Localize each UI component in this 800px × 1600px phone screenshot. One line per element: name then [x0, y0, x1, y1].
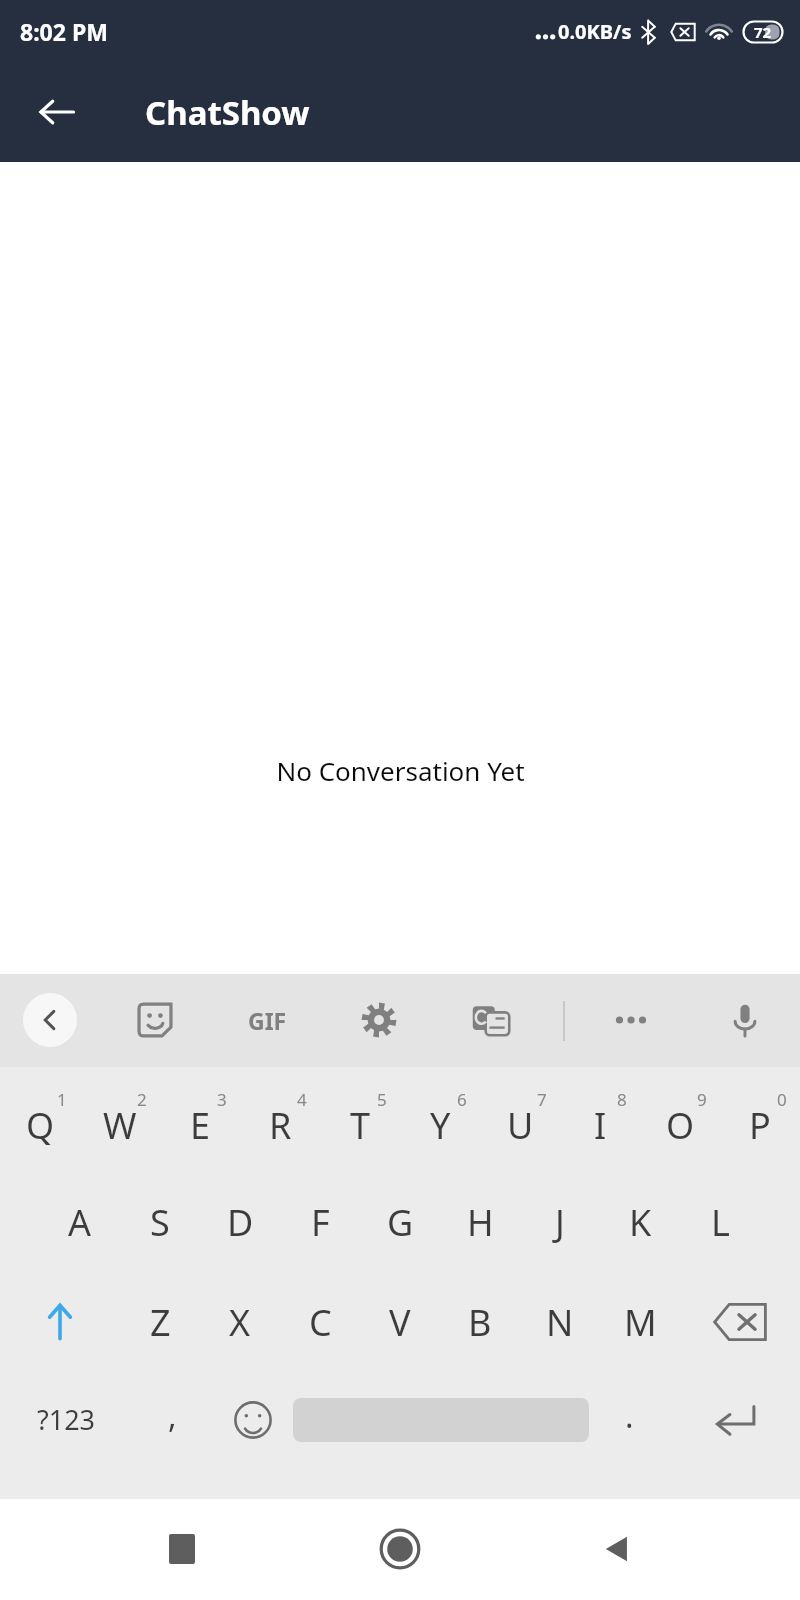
button[interactable]: W — [80, 1067, 160, 1172]
staticText: H — [467, 1198, 494, 1247]
staticText: P — [749, 1101, 771, 1150]
staticText: D — [227, 1198, 254, 1247]
staticText: No Conversation Yet — [276, 753, 525, 788]
staticText: 3 — [217, 1088, 227, 1111]
button[interactable]: A — [40, 1172, 120, 1272]
button[interactable]: Voice input — [718, 993, 772, 1047]
staticText: I — [594, 1101, 607, 1150]
staticText: U — [507, 1101, 534, 1150]
button[interactable]: Q — [0, 1067, 80, 1172]
button[interactable]: Enter — [669, 1372, 800, 1467]
button[interactable]: V — [360, 1272, 440, 1372]
button[interactable]: E — [160, 1067, 240, 1172]
button[interactable]: G — [360, 1172, 440, 1272]
staticText: N — [546, 1298, 574, 1347]
button[interactable]: R — [240, 1067, 320, 1172]
staticText: Z — [150, 1298, 171, 1347]
staticText: L — [711, 1198, 730, 1247]
button[interactable]: Close toolbar — [23, 993, 77, 1047]
staticText: Q — [26, 1101, 55, 1150]
button[interactable]: Home — [364, 1513, 436, 1585]
staticText: . — [625, 1394, 634, 1438]
staticText: S — [150, 1198, 170, 1247]
staticText: T — [350, 1101, 371, 1150]
button[interactable]: Backspace — [680, 1272, 800, 1372]
staticText: 9 — [697, 1088, 707, 1111]
staticText: C — [309, 1298, 332, 1347]
button[interactable]: F — [280, 1172, 360, 1272]
staticText: F — [311, 1198, 330, 1247]
staticText: G — [387, 1198, 414, 1247]
button[interactable]: Settings — [352, 993, 406, 1047]
button[interactable]: C — [280, 1272, 360, 1372]
button[interactable]: K — [600, 1172, 680, 1272]
button[interactable]: Emoji — [213, 1372, 293, 1467]
button[interactable]: X — [200, 1272, 280, 1372]
staticText: ?123 — [37, 1401, 96, 1438]
staticText: K — [629, 1198, 652, 1247]
button[interactable]: Back — [582, 1513, 654, 1585]
button[interactable]: Shift — [0, 1272, 120, 1372]
staticText: V — [389, 1298, 411, 1347]
staticText: 5 — [377, 1088, 387, 1111]
staticText: 8:02 PM — [20, 16, 108, 47]
staticText: X — [229, 1298, 251, 1347]
button[interactable]: Recent apps — [146, 1513, 218, 1585]
button[interactable]: J — [520, 1172, 600, 1272]
staticText: 72 — [754, 22, 772, 42]
staticText: O — [666, 1101, 695, 1150]
button[interactable]: Sticker — [128, 993, 182, 1047]
staticText: 1 — [57, 1088, 67, 1111]
button[interactable]: T — [320, 1067, 400, 1172]
staticText: Y — [430, 1101, 451, 1150]
button[interactable]: O — [640, 1067, 720, 1172]
button[interactable]: ?123 — [0, 1372, 132, 1467]
button[interactable]: H — [440, 1172, 520, 1272]
staticText: R — [269, 1101, 292, 1150]
button[interactable]: GIF — [240, 993, 294, 1047]
button[interactable]: L — [680, 1172, 760, 1272]
staticText: GIF — [248, 1005, 287, 1036]
button[interactable]: Z — [120, 1272, 200, 1372]
staticText: 4 — [297, 1088, 307, 1111]
button[interactable]: GIF — [240, 993, 294, 1047]
staticText: 0 — [777, 1088, 787, 1111]
button[interactable]: Translate — [464, 993, 518, 1047]
staticText: 6 — [457, 1088, 467, 1111]
button[interactable]: More options — [604, 993, 658, 1047]
button[interactable]: M — [600, 1272, 680, 1372]
button[interactable]: I — [560, 1067, 640, 1172]
button[interactable]: , — [132, 1372, 213, 1467]
button[interactable]: S — [120, 1172, 200, 1272]
button[interactable]: B — [440, 1272, 520, 1372]
staticText: A — [68, 1198, 92, 1247]
button[interactable]: P — [720, 1067, 800, 1172]
button[interactable]: Space — [293, 1372, 589, 1467]
staticText: M — [624, 1298, 657, 1347]
button[interactable]: N — [520, 1272, 600, 1372]
button[interactable]: Back — [20, 75, 94, 149]
staticText: E — [190, 1101, 211, 1150]
staticText: 0.0KB/s — [558, 18, 632, 45]
staticText: B — [468, 1298, 492, 1347]
staticText: ChatShow — [145, 90, 310, 135]
button[interactable]: Y — [400, 1067, 480, 1172]
button[interactable]: U — [480, 1067, 560, 1172]
button[interactable]: D — [200, 1172, 280, 1272]
staticText: J — [555, 1198, 565, 1247]
staticText: 8 — [617, 1088, 627, 1111]
staticText: 2 — [137, 1088, 147, 1111]
staticText: 7 — [537, 1088, 547, 1111]
button[interactable]: . — [589, 1372, 669, 1467]
staticText: W — [103, 1101, 137, 1150]
staticText: , — [168, 1394, 177, 1438]
